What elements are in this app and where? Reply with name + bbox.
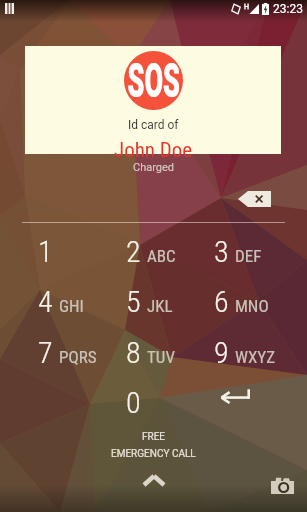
button[interactable]: 0 — [110, 378, 198, 426]
button[interactable]: 8 — [110, 328, 198, 376]
staticText: 23:23 — [273, 2, 303, 16]
staticText: DEF — [235, 246, 262, 266]
staticText: TUV — [147, 347, 175, 367]
staticText: 9 — [214, 335, 229, 370]
button[interactable]: Delete — [238, 191, 271, 207]
button[interactable]: SOS — [25, 46, 281, 154]
staticText: MNO — [235, 296, 269, 316]
staticText: 2 — [126, 234, 141, 269]
staticText: SOS — [128, 52, 180, 109]
button[interactable]: Unlock — [134, 460, 174, 500]
staticText: 0 — [126, 385, 141, 420]
staticText: H — [244, 3, 249, 11]
button[interactable]: 1 — [22, 227, 110, 275]
staticText: Charged — [133, 161, 175, 174]
staticText: Id card of — [128, 118, 179, 132]
button[interactable]: 7 — [22, 328, 110, 376]
button[interactable]: 2 — [110, 227, 198, 275]
staticText: 3 — [214, 234, 229, 269]
button[interactable]: 9 — [198, 328, 286, 376]
button[interactable]: Enter — [206, 378, 276, 412]
staticText: WXYZ — [235, 347, 276, 367]
button[interactable]: FREE — [0, 431, 307, 460]
staticText: 4 — [38, 284, 53, 319]
button[interactable]: 3 — [198, 227, 286, 275]
staticText: 5 — [126, 284, 141, 319]
staticText: 6 — [214, 284, 229, 319]
staticText: ABC — [147, 246, 176, 266]
staticText: GHI — [59, 296, 84, 316]
button[interactable]: 6 — [198, 277, 286, 325]
staticText: JKL — [147, 296, 173, 316]
button[interactable]: 4 — [22, 277, 110, 325]
staticText: 7 — [38, 335, 53, 370]
staticText: EMERGENCY CALL — [111, 448, 196, 460]
staticText: John Doe — [114, 138, 193, 163]
staticText: FREE — [142, 431, 166, 443]
staticText: 1 — [38, 234, 53, 269]
button[interactable]: Camera — [265, 468, 299, 502]
button[interactable]: 5 — [110, 277, 198, 325]
staticText: PQRS — [59, 347, 97, 367]
staticText: 8 — [126, 335, 141, 370]
